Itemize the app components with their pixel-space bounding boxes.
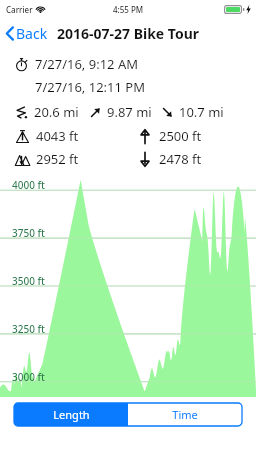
staticText: 3750 ft xyxy=(12,226,45,240)
staticText: 2478 ft xyxy=(159,150,202,168)
staticText: Time xyxy=(172,407,198,422)
staticText: 9.87 mi xyxy=(107,103,152,121)
staticText: 4043 ft xyxy=(36,127,79,145)
staticText: 7/27/16, 12:11 PM xyxy=(35,78,145,96)
staticText: 2016-07-27 Bike Tour xyxy=(57,24,200,43)
staticText: 10.7 mi xyxy=(179,103,224,121)
staticText: 7/27/16, 9:12 AM xyxy=(35,55,138,73)
staticText: 3500 ft xyxy=(12,274,45,288)
staticText: 3000 ft xyxy=(12,370,45,384)
staticText: Back xyxy=(16,24,48,43)
staticText: 3250 ft xyxy=(12,322,45,336)
staticText: Carrier xyxy=(6,4,33,15)
staticText: 2500 ft xyxy=(159,127,202,145)
button[interactable]: Time xyxy=(128,403,242,426)
button[interactable]: Length xyxy=(14,403,128,426)
staticText: 4000 ft xyxy=(12,178,45,192)
staticText: 4:55 PM xyxy=(113,4,144,15)
staticText: Length xyxy=(53,407,90,422)
staticText: 20.6 mi xyxy=(34,103,79,121)
button[interactable]: Back xyxy=(0,21,53,46)
staticText: 2952 ft xyxy=(36,150,79,168)
